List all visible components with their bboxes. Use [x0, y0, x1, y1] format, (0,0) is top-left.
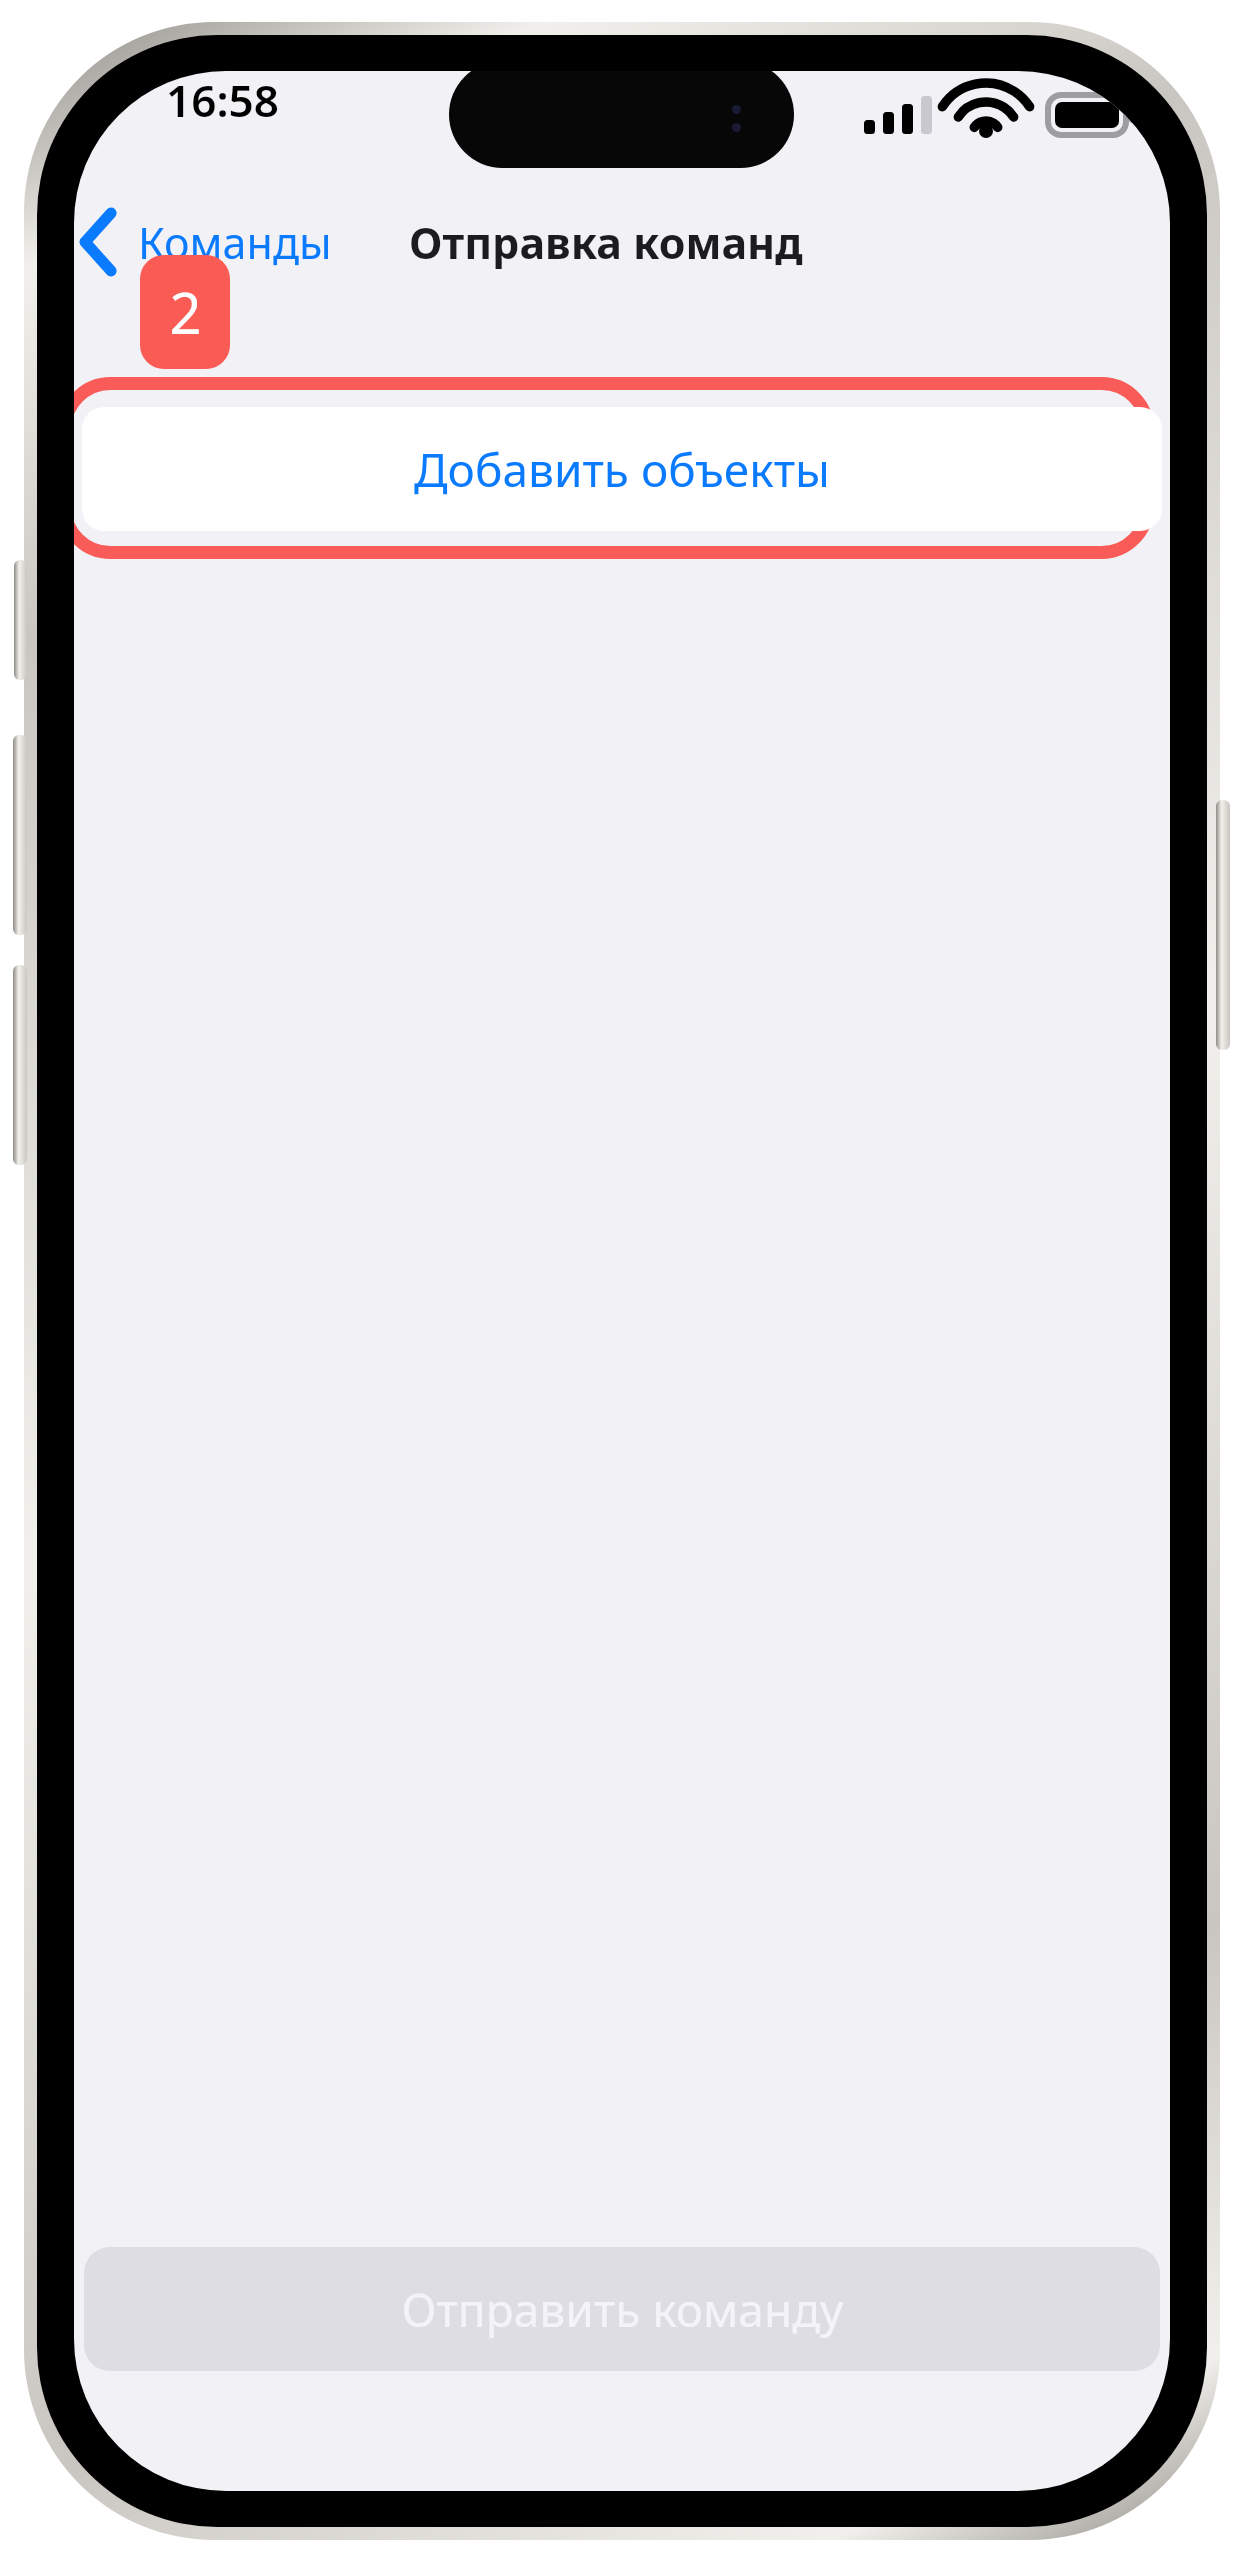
staticText: 16:58 [166, 71, 279, 130]
staticText: Отправка команд [409, 213, 803, 272]
staticText: Добавить объекты [414, 438, 830, 501]
staticText: Команды [138, 213, 332, 272]
button[interactable]: Отправить команду [84, 2247, 1160, 2371]
button[interactable]: Команды [74, 196, 332, 288]
button[interactable]: Добавить объекты [82, 407, 1162, 531]
staticText: Отправить команду [401, 2278, 844, 2341]
staticText: 2 [169, 274, 202, 350]
